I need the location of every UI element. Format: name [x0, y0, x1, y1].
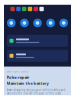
staticText: BATTERY CARE — [6, 70, 27, 73]
button[interactable]: Quick action — [46, 19, 55, 27]
button[interactable]: Quick action — [59, 19, 68, 27]
button[interactable] — [7, 35, 68, 47]
staticText: Maintain the battery — [6, 80, 48, 86]
button[interactable]: Quick action — [20, 19, 29, 27]
button[interactable]: Quick action — [33, 19, 42, 27]
button[interactable]: Quick action — [7, 19, 16, 27]
button[interactable] — [7, 50, 68, 62]
staticText: Pulse repair — [6, 74, 29, 80]
staticText: Smart charging keeps your cells healthy … — [6, 88, 65, 95]
